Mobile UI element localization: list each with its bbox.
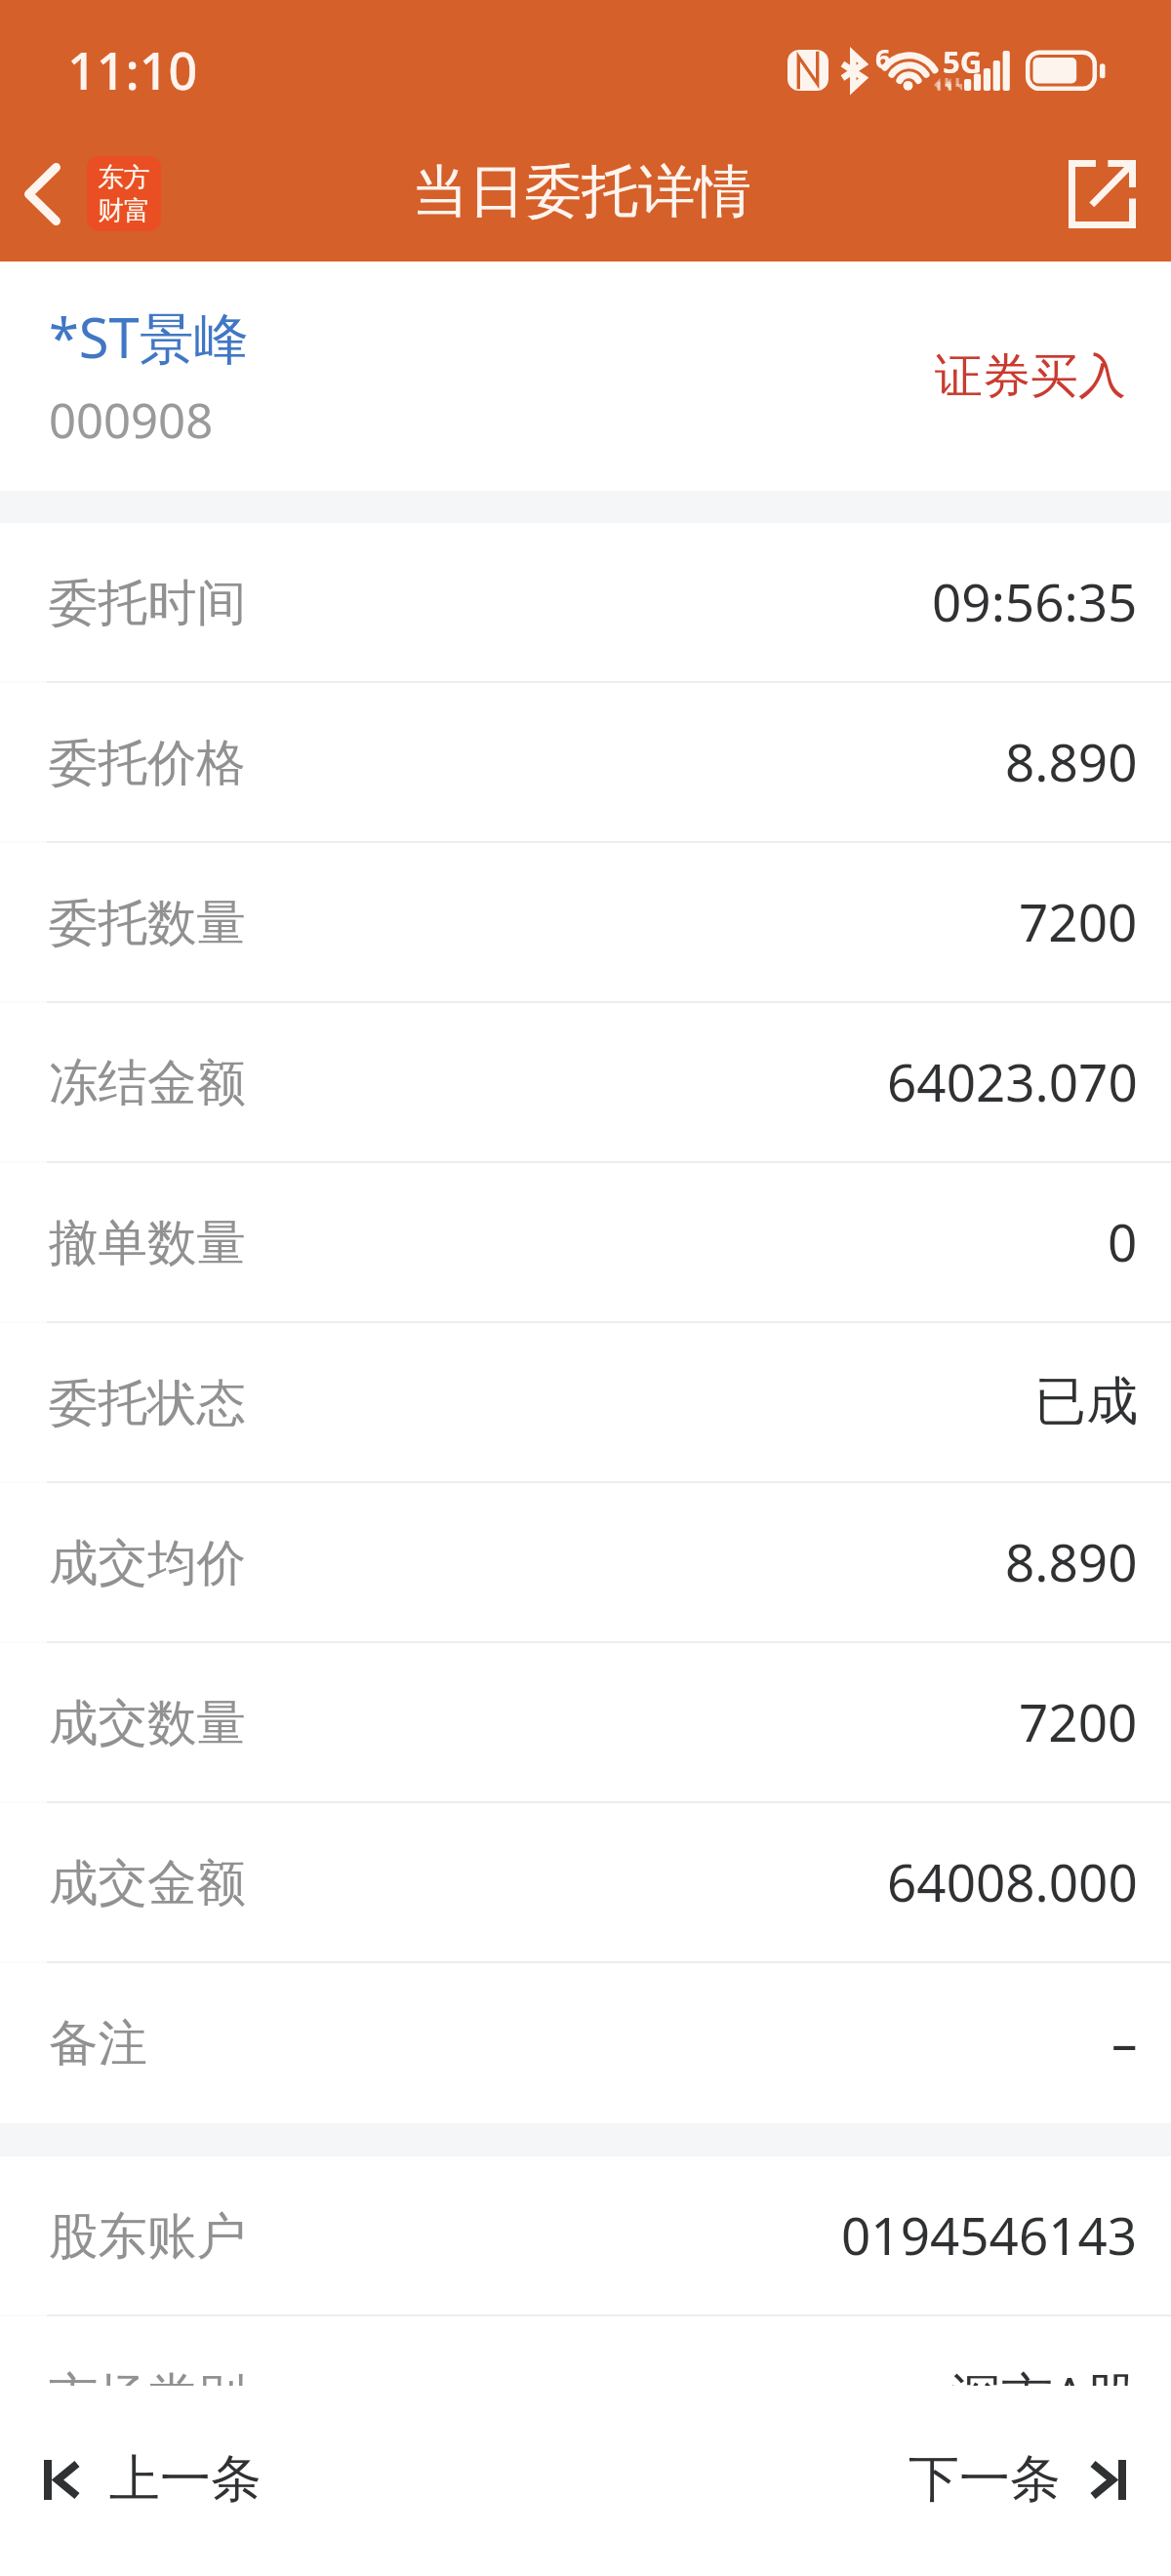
staticText: 64008.000	[887, 1846, 1138, 1916]
button[interactable]: 成交金额	[0, 1803, 1171, 1963]
staticText: 东方	[98, 161, 150, 194]
staticText: 成交均价	[49, 1532, 246, 1594]
staticText: 成交金额	[49, 1852, 246, 1914]
button[interactable]: 市场类别	[0, 2316, 1171, 2476]
staticText: 000908	[49, 387, 214, 453]
button[interactable]: 成交数量	[0, 1643, 1171, 1803]
staticText: 备注	[49, 2012, 147, 2074]
staticText: 证券买入	[935, 346, 1126, 407]
staticText: 下一条	[909, 2447, 1061, 2512]
staticText: 委托编号	[49, 2495, 246, 2557]
button[interactable]: 股东账户	[0, 2156, 1171, 2316]
staticText: 5G	[943, 41, 983, 82]
staticText: *ST景峰	[49, 300, 249, 374]
staticText: 冻结金额	[49, 1052, 246, 1114]
staticText: –	[1111, 2006, 1138, 2076]
staticText: 成交数量	[49, 1692, 246, 1754]
button[interactable]: Share	[1047, 139, 1171, 250]
button[interactable]: 成交均价	[0, 1483, 1171, 1643]
staticText: 财富	[98, 194, 150, 227]
staticText: 深市A股	[949, 2359, 1138, 2430]
staticText: 7200	[1019, 886, 1138, 956]
staticText: 123456	[960, 2489, 1138, 2559]
staticText: 7200	[1019, 1686, 1138, 1756]
staticText: 当日委托详情	[412, 156, 751, 227]
button[interactable]: 冻结金额	[0, 1003, 1171, 1163]
button[interactable]: 委托时间	[0, 523, 1171, 683]
staticText: 上一条	[109, 2447, 262, 2512]
staticText: 市场类别	[49, 2365, 246, 2428]
button[interactable]: 委托数量	[0, 843, 1171, 1003]
staticText: 委托状态	[49, 1372, 246, 1434]
staticText: 已成	[1034, 1369, 1138, 1434]
button[interactable]: 委托价格	[0, 683, 1171, 843]
staticText: 0	[1108, 1206, 1138, 1276]
button[interactable]: 下一条	[889, 2430, 1171, 2529]
staticText: 委托时间	[49, 572, 246, 634]
staticText: 64023.070	[887, 1046, 1138, 1116]
staticText: 8.890	[1005, 1526, 1138, 1596]
staticText: 09:56:35	[932, 566, 1138, 636]
button[interactable]: 委托编号	[0, 2476, 1171, 2576]
button[interactable]: 撤单数量	[0, 1163, 1171, 1323]
button[interactable]: Back	[0, 145, 72, 243]
staticText: 8.890	[1005, 726, 1138, 796]
staticText: 11:10	[67, 35, 198, 104]
staticText: 0194546143	[841, 2199, 1138, 2270]
staticText: 委托数量	[49, 892, 246, 954]
staticText: 撤单数量	[49, 1212, 246, 1274]
button[interactable]: 备注	[0, 1963, 1171, 2123]
staticText: 股东账户	[49, 2205, 246, 2268]
staticText: 委托价格	[49, 732, 246, 794]
button[interactable]: 上一条	[0, 2430, 281, 2529]
staticText: 6	[875, 40, 891, 76]
button[interactable]: 委托状态	[0, 1323, 1171, 1483]
button[interactable]: East Money	[87, 156, 161, 231]
